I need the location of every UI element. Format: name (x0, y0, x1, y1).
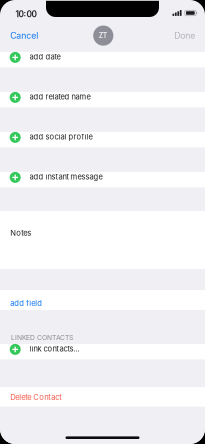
staticText: 10:00 (15, 9, 36, 19)
staticText: Delete Contact (10, 393, 61, 402)
button[interactable]: add social profile (0, 132, 205, 148)
staticText: ZT (99, 31, 108, 40)
staticText: link contacts... (30, 344, 80, 353)
button[interactable]: add date (0, 52, 205, 68)
staticText: Notes (10, 228, 31, 238)
staticText: LINKED CONTACTS (11, 333, 73, 342)
button[interactable]: Done (168, 26, 205, 45)
staticText: Done (174, 30, 195, 41)
staticText: Cancel (10, 30, 38, 41)
button[interactable]: Delete Contact (0, 387, 205, 407)
button[interactable]: add instant message (0, 172, 205, 188)
staticText: add instant message (30, 172, 103, 181)
button[interactable]: Notes (0, 211, 205, 269)
staticText: add social profile (30, 132, 93, 141)
button[interactable]: link contacts... (0, 344, 205, 360)
button[interactable]: add related name (0, 92, 205, 108)
button[interactable]: add field (0, 290, 205, 310)
button[interactable]: Contact photo (92, 25, 113, 46)
button[interactable]: Cancel (0, 26, 44, 45)
staticText: add date (30, 52, 61, 61)
staticText: add field (10, 299, 42, 308)
staticText: add related name (30, 92, 91, 101)
